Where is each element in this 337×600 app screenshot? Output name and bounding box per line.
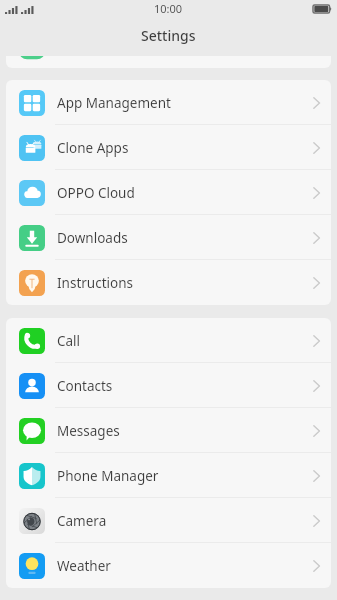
staticText: Contacts bbox=[57, 377, 113, 395]
staticText: Settings bbox=[141, 26, 196, 45]
button[interactable]: Downloads bbox=[6, 215, 331, 260]
staticText: Clone Apps bbox=[57, 139, 129, 157]
button[interactable]: App Management bbox=[6, 80, 331, 125]
button[interactable]: Clone Apps bbox=[6, 125, 331, 170]
staticText: Camera bbox=[57, 512, 107, 530]
staticText: Messages bbox=[57, 422, 120, 440]
staticText: Weather bbox=[57, 557, 111, 575]
button[interactable]: Instructions bbox=[6, 260, 331, 305]
staticText: 10:00 bbox=[154, 1, 183, 16]
staticText: Instructions bbox=[57, 274, 133, 292]
staticText: Downloads bbox=[57, 229, 128, 247]
staticText: Phone Manager bbox=[57, 467, 159, 485]
button[interactable]: Weather bbox=[6, 543, 331, 588]
button[interactable]: Messages bbox=[6, 408, 331, 453]
button[interactable]: Contacts bbox=[6, 363, 331, 408]
button[interactable]: Phone Manager bbox=[6, 453, 331, 498]
button[interactable]: OPPO Cloud bbox=[6, 170, 331, 215]
staticText: Call bbox=[57, 332, 81, 350]
staticText: OPPO Cloud bbox=[57, 184, 135, 202]
staticText: App Management bbox=[57, 94, 171, 112]
button[interactable]: Call bbox=[6, 318, 331, 363]
button[interactable]: Camera bbox=[6, 498, 331, 543]
